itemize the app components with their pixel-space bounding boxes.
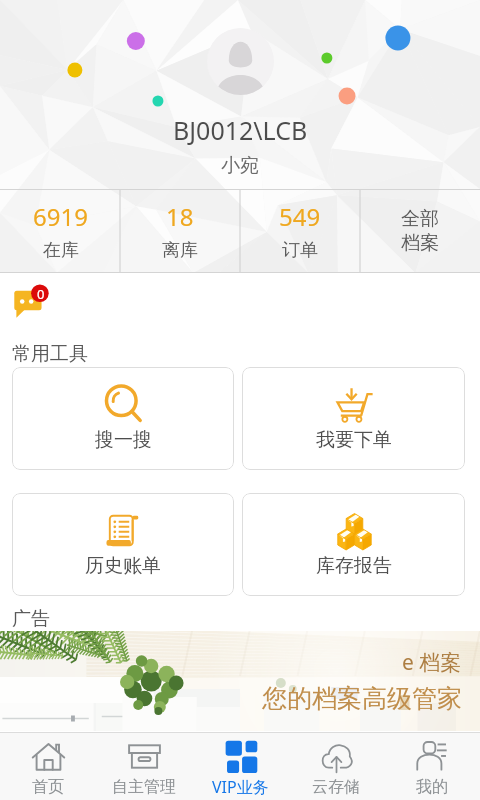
staticText: 搜一搜 — [95, 428, 152, 452]
button[interactable]: 历史账单 — [12, 493, 234, 596]
button[interactable]: 18 — [120, 189, 240, 273]
button[interactable]: 6919 — [0, 189, 120, 273]
staticText: e 档案 — [402, 648, 462, 677]
staticText: 订单 — [282, 239, 318, 262]
staticText: VIP业务 — [212, 776, 269, 798]
staticText: 全部 — [401, 207, 439, 231]
button[interactable]: 我的 — [384, 732, 480, 800]
button[interactable]: 自主管理 — [96, 732, 192, 800]
button[interactable]: e 档案 — [0, 631, 480, 731]
button[interactable]: 全部 — [360, 189, 480, 273]
button[interactable]: 云存储 — [288, 732, 384, 800]
staticText: 您的档案高级管家 — [262, 683, 462, 714]
button[interactable]: Messages — [11, 281, 58, 328]
button[interactable]: 搜一搜 — [12, 367, 234, 470]
staticText: 小宛 — [221, 154, 259, 178]
staticText: 自主管理 — [112, 777, 176, 797]
staticText: 18 — [166, 200, 194, 233]
staticText: 0 — [37, 285, 45, 302]
button[interactable]: VIP业务 — [192, 732, 288, 800]
staticText: 549 — [279, 200, 321, 233]
staticText: 库存报告 — [316, 554, 392, 578]
staticText: 档案 — [401, 231, 439, 255]
button[interactable]: 库存报告 — [242, 493, 465, 596]
staticText: 首页 — [32, 777, 64, 797]
staticText: 离库 — [162, 239, 198, 262]
button[interactable]: 我要下单 — [242, 367, 465, 470]
staticText: 广告 — [12, 607, 50, 631]
staticText: 我要下单 — [316, 428, 392, 452]
button[interactable]: 首页 — [0, 732, 96, 800]
button[interactable]: 549 — [240, 189, 360, 273]
staticText: 在库 — [43, 239, 79, 262]
staticText: 6919 — [33, 200, 88, 233]
staticText: 常用工具 — [12, 342, 88, 366]
staticText: 我的 — [416, 777, 448, 797]
staticText: BJ0012\LCB — [173, 113, 308, 147]
staticText: 云存储 — [312, 777, 360, 797]
staticText: 历史账单 — [85, 554, 161, 578]
